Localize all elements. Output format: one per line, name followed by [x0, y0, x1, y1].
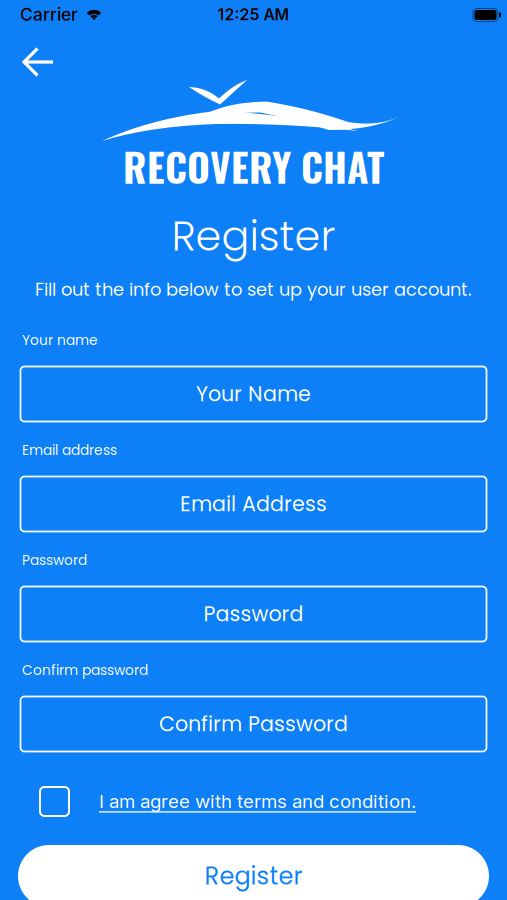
staticText: Your Name	[196, 379, 311, 408]
staticText: Register	[171, 207, 335, 265]
staticText: Confirm Password	[159, 709, 348, 738]
button[interactable]: Password	[20, 586, 486, 641]
button[interactable]: Register	[18, 845, 489, 900]
staticText: Carrier	[20, 4, 78, 25]
button[interactable]: Your Name	[20, 366, 486, 421]
staticText: Email Address	[180, 489, 327, 518]
button[interactable]: Back	[16, 40, 61, 84]
staticText: I am agree with terms and condition.	[99, 790, 416, 813]
button[interactable]: Agree to terms	[40, 787, 69, 816]
staticText: Your name	[22, 330, 98, 350]
staticText: 12:25 AM	[217, 5, 289, 24]
staticText: Confirm password	[22, 660, 148, 680]
staticText: Password	[22, 550, 87, 570]
staticText: Email address	[22, 440, 117, 460]
button[interactable]: Confirm Password	[20, 696, 486, 751]
button[interactable]: Email Address	[20, 476, 486, 531]
button[interactable]: I am agree with terms and condition.	[99, 790, 416, 813]
staticText: Password	[203, 599, 303, 628]
staticText: RECOVERY CHAT	[123, 137, 384, 195]
staticText: Register	[204, 859, 302, 893]
staticText: Fill out the info below to set up your u…	[35, 277, 472, 302]
